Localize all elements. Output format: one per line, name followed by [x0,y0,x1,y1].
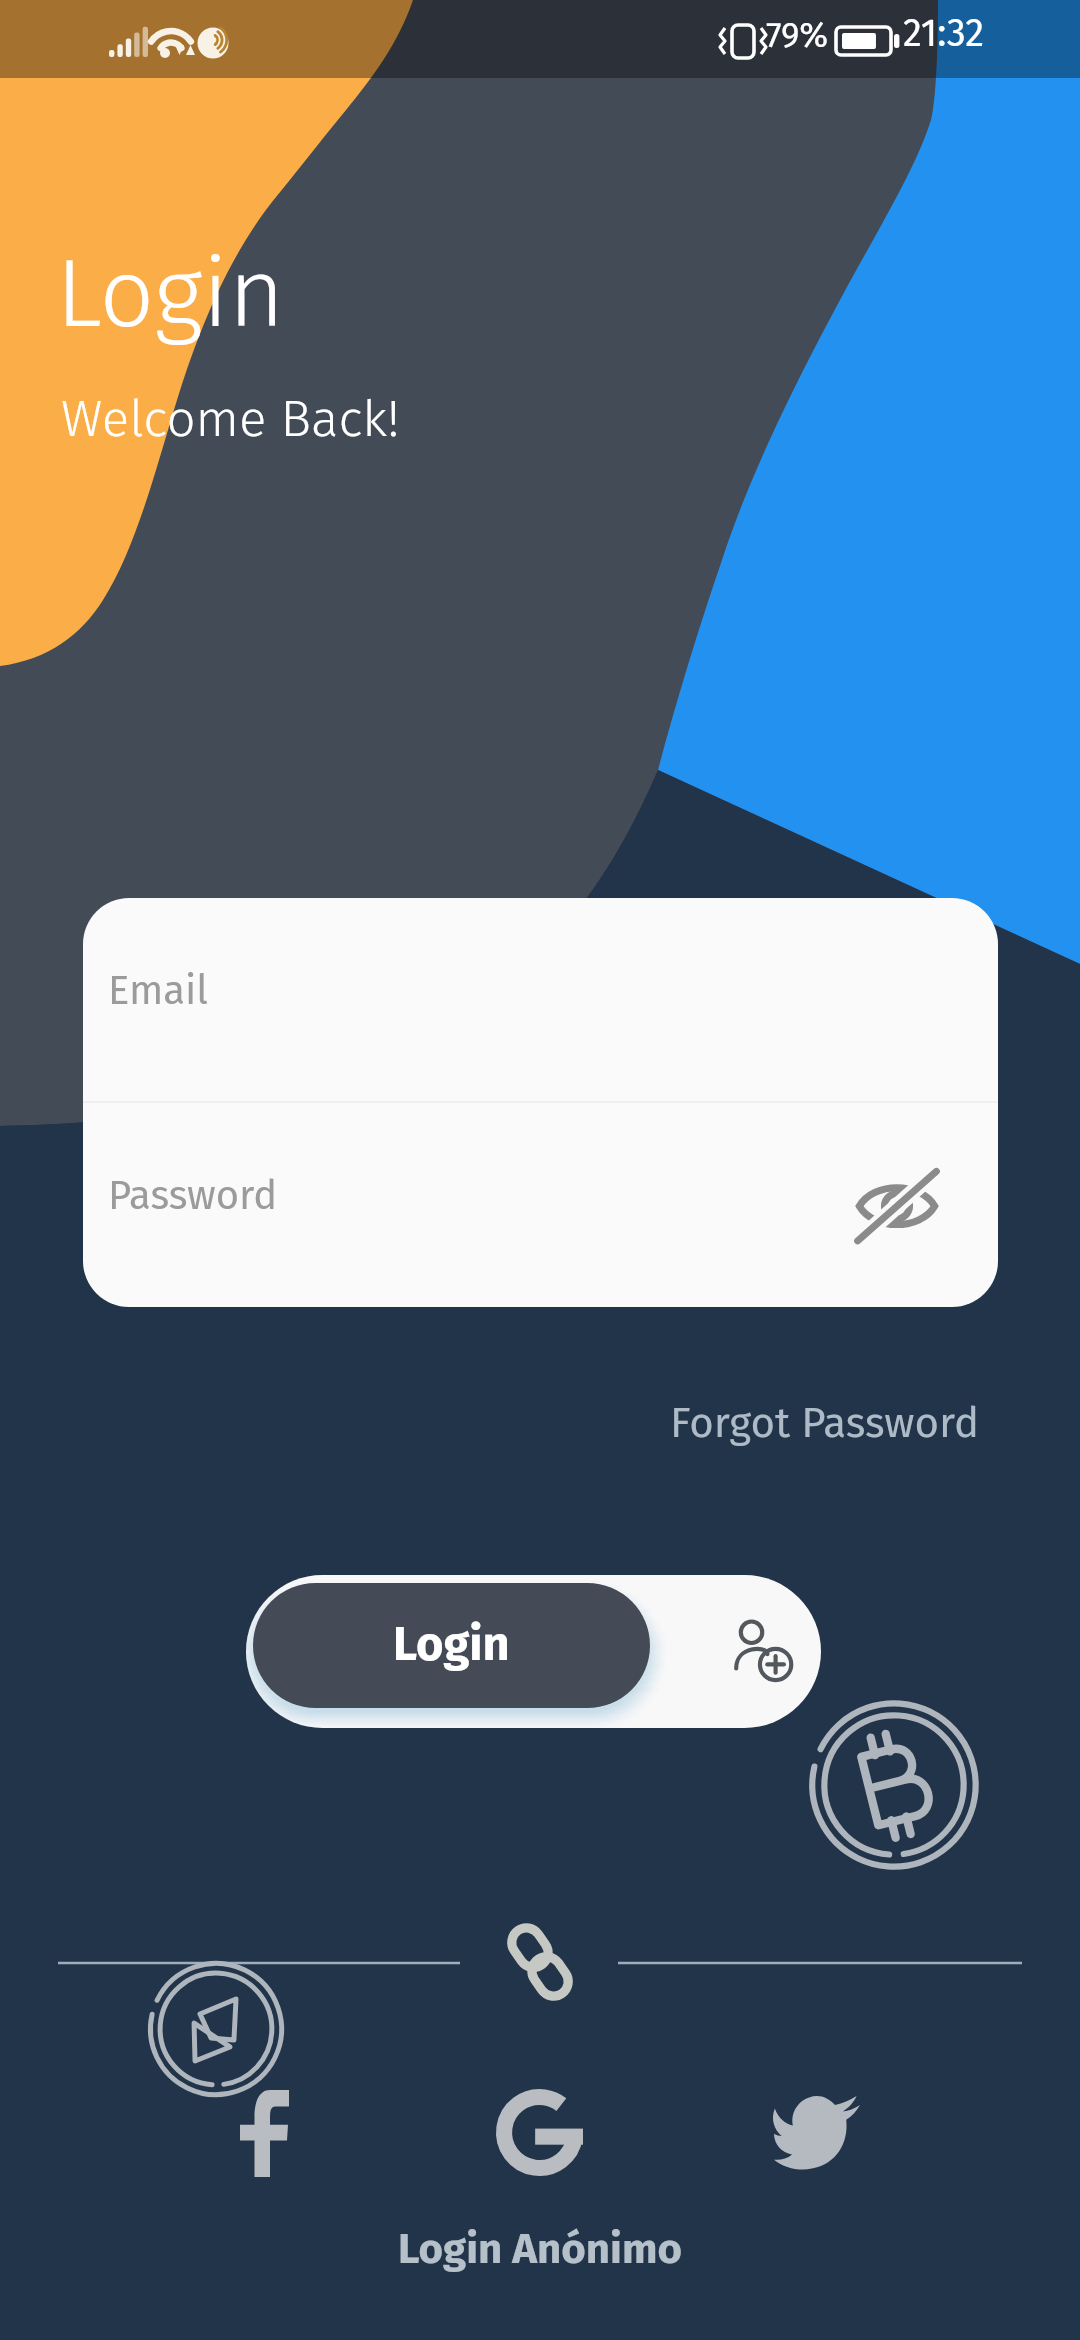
button[interactable]: Email [83,898,998,1101]
staticText: 79% [766,14,829,56]
button[interactable]: Forgot Password [670,1398,979,1448]
staticText: Forgot Password [670,1398,979,1448]
other: Register [735,1620,793,1677]
button[interactable]: Login with Twitter [774,2096,860,2170]
button[interactable]: Login Anónimo [0,2224,1080,2274]
button[interactable]: Login [246,1575,821,1728]
button[interactable]: Login with Facebook [239,2090,289,2177]
staticText: Password [108,1172,278,1220]
button[interactable]: Show password [856,1177,938,1233]
button[interactable]: Password [83,1103,998,1307]
staticText: Login Anónimo [398,2224,682,2274]
staticText: 21:32 [903,10,985,56]
other: Link [500,1922,580,2002]
staticText: Welcome Back! [61,388,400,449]
button[interactable]: Login with Google [496,2089,583,2176]
staticText: Login [56,236,285,351]
staticText: Email [108,967,209,1015]
staticText: Login [393,1616,510,1672]
